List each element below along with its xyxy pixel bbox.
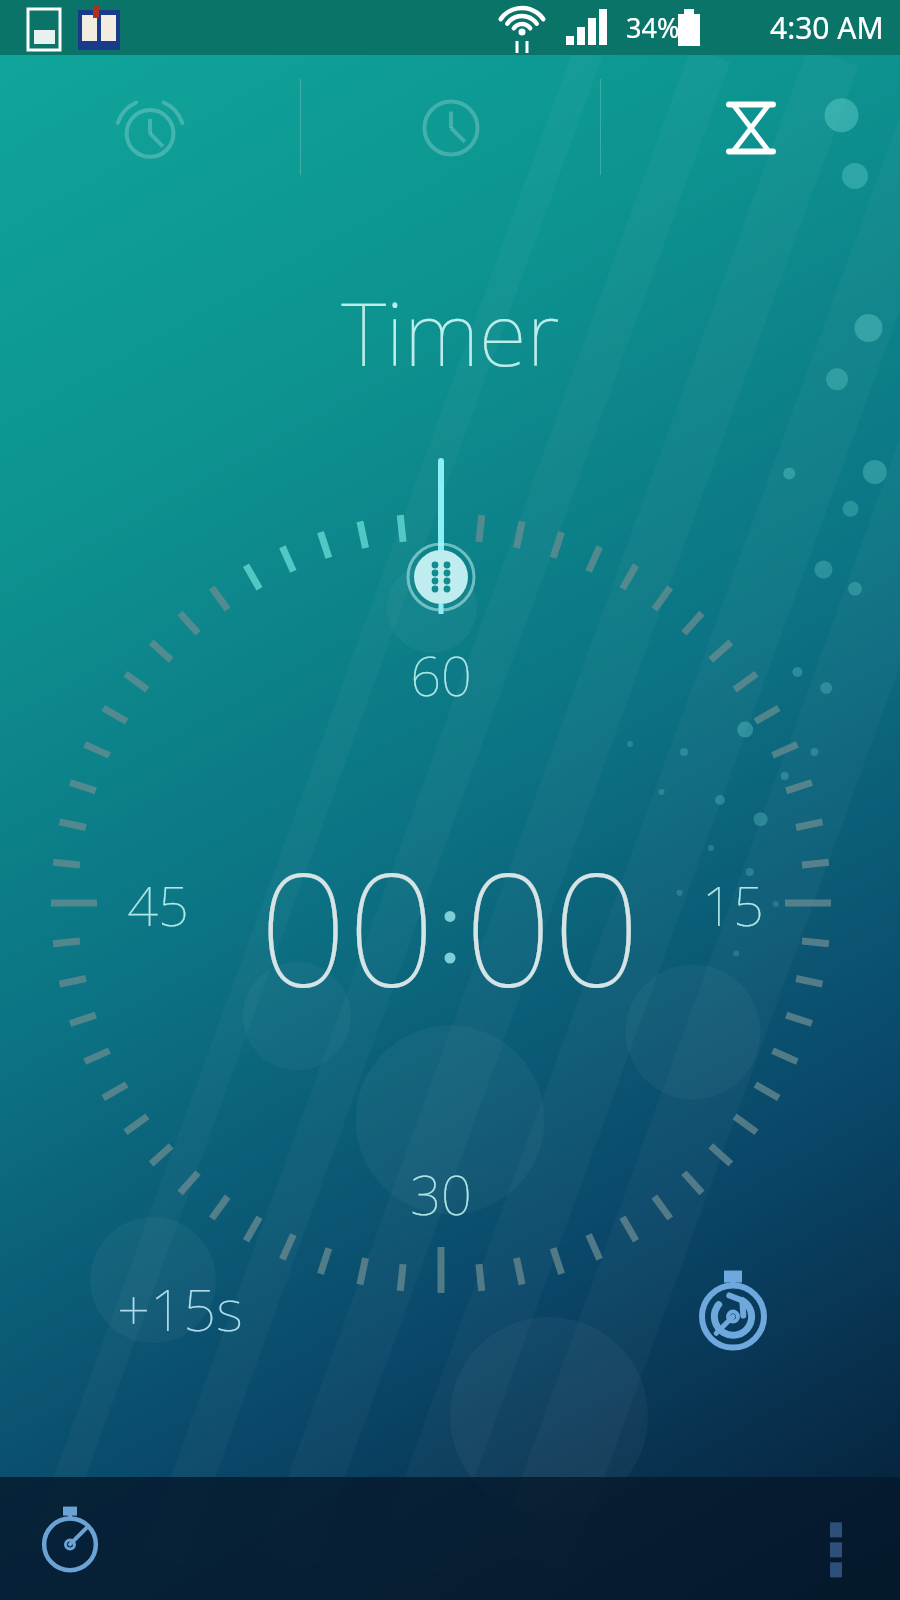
staticText: 45 [127, 868, 189, 938]
button[interactable]: Alarm [0, 55, 300, 200]
staticText: +15s [117, 1269, 243, 1348]
staticText: 15 [702, 868, 764, 938]
button[interactable]: Stopwatch [20, 1489, 120, 1589]
staticText: 30 [410, 1157, 472, 1227]
button[interactable]: Timer [601, 55, 900, 200]
staticText: 34% [626, 9, 680, 46]
button[interactable]: Reset timer [678, 1255, 788, 1365]
staticText: 4:30 AM [770, 7, 884, 48]
staticText: 60 [410, 638, 472, 708]
button[interactable]: More options [790, 1493, 882, 1585]
button[interactable]: +15s [90, 1256, 270, 1360]
staticText: 00 [259, 820, 436, 1031]
staticText: Timer [341, 272, 560, 392]
staticText: 00 [464, 820, 641, 1031]
button[interactable]: World clock [301, 55, 600, 200]
